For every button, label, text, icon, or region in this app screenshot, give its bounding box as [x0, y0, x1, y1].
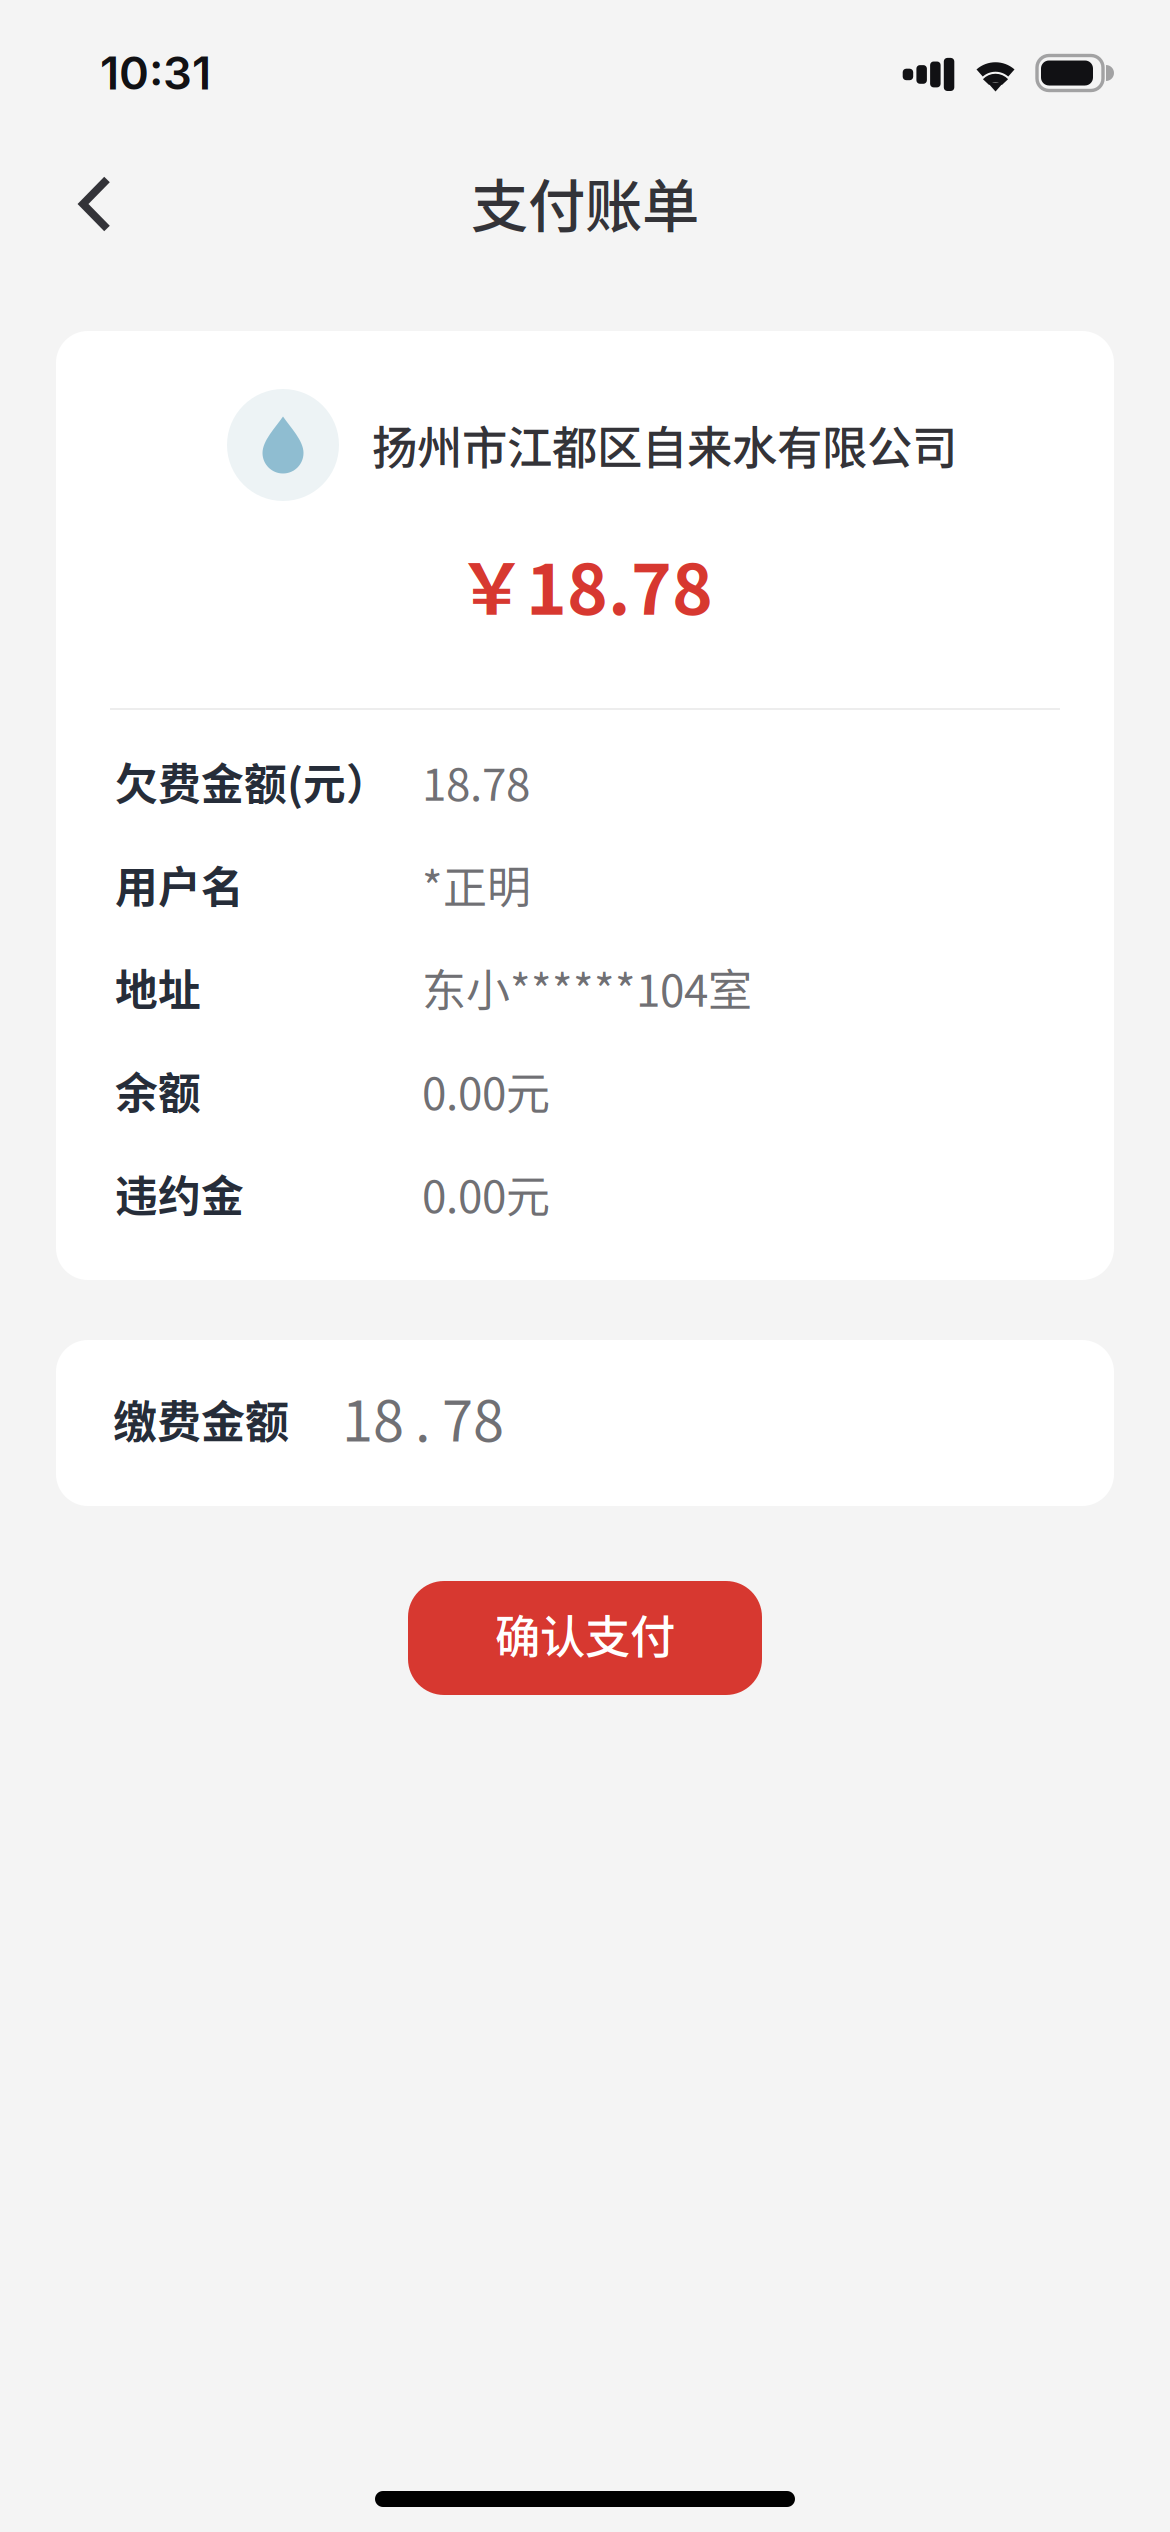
staticText: 支付账单 [471, 160, 699, 243]
staticText: 地址 [115, 957, 201, 1018]
staticText: *正明 [422, 853, 531, 916]
button[interactable]: 返回 [0, 146, 190, 272]
staticText: 18.78 [422, 750, 530, 813]
staticText: 10:31 [100, 46, 211, 100]
staticText: 0.00元 [422, 1162, 550, 1225]
staticText: 缴费金额 [113, 1387, 289, 1451]
staticText: 18 . 78 [342, 1376, 504, 1458]
staticText: 确认支付 [495, 1601, 675, 1667]
staticText: 0.00元 [422, 1059, 550, 1122]
staticText: 余额 [115, 1060, 201, 1121]
staticText: 违约金 [115, 1163, 244, 1224]
staticText: 扬州市江都区自来水有限公司 [372, 412, 957, 478]
staticText: ￥18.78 [457, 534, 713, 635]
staticText: 用户名 [115, 854, 244, 915]
staticText: 欠费金额(元） [115, 751, 389, 812]
button[interactable]: 确认支付 [408, 1581, 762, 1695]
staticText: 东小******104室 [422, 956, 752, 1019]
